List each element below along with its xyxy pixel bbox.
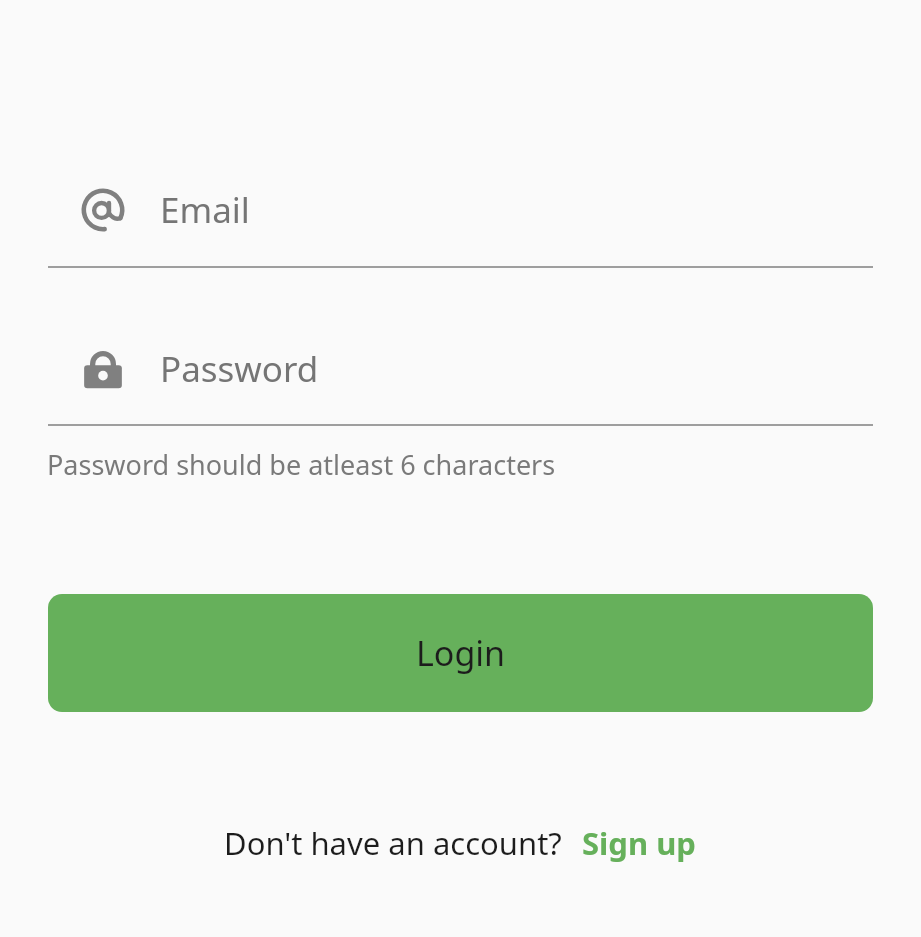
staticText: Email: [160, 186, 250, 234]
button[interactable]: Email: [48, 168, 873, 252]
staticText: Password should be atleast 6 characters: [47, 446, 556, 483]
staticText: Login: [416, 630, 506, 676]
other: Password: [80, 346, 126, 392]
staticText: Don't have an account?: [224, 822, 562, 864]
button[interactable]: Sign up: [580, 818, 698, 868]
staticText: Password: [160, 345, 319, 393]
button[interactable]: Password: [48, 327, 873, 411]
other: Email: [79, 186, 127, 234]
button[interactable]: Login: [48, 594, 873, 712]
staticText: Sign up: [582, 822, 696, 864]
